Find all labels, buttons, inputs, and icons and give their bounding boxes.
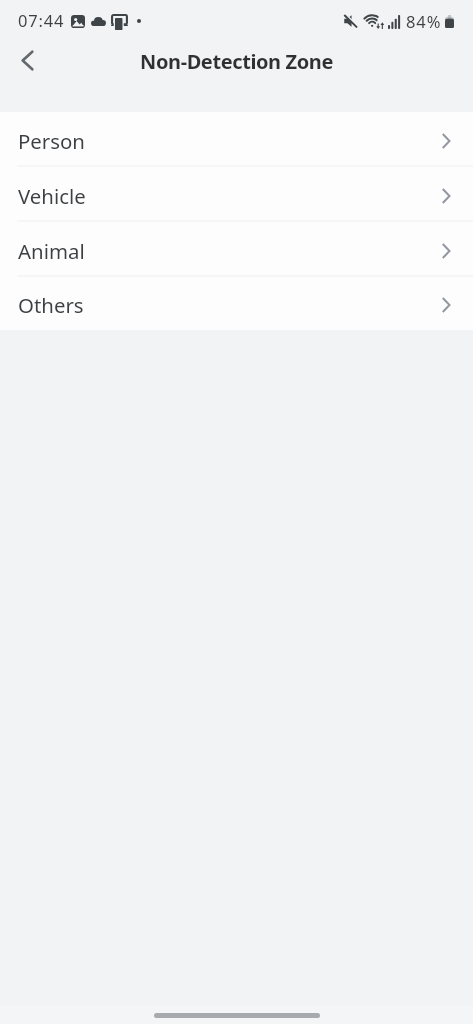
button[interactable]: Animal bbox=[0, 222, 473, 277]
staticText: 84% bbox=[406, 10, 442, 32]
staticText: 07:44 bbox=[18, 9, 65, 31]
button[interactable]: Person bbox=[0, 112, 473, 167]
button[interactable]: Others bbox=[0, 277, 473, 330]
staticText: Others bbox=[18, 291, 84, 319]
button[interactable]: Back bbox=[3, 37, 51, 85]
staticText: Animal bbox=[18, 237, 85, 265]
staticText: Non-Detection Zone bbox=[140, 48, 333, 75]
staticText: Vehicle bbox=[18, 182, 86, 210]
staticText: Person bbox=[18, 127, 85, 155]
button[interactable]: Vehicle bbox=[0, 167, 473, 222]
